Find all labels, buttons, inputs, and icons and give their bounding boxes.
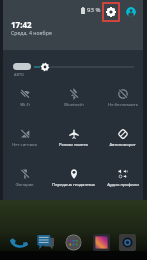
button[interactable]: Фонарик xyxy=(0,160,49,200)
button[interactable]: Phone xyxy=(9,234,26,251)
staticText: 17:42 xyxy=(11,19,32,30)
button[interactable]: Auto brightness xyxy=(13,63,31,70)
staticText: Передача геоданных xyxy=(52,182,95,188)
button[interactable]: All apps xyxy=(65,234,82,251)
button[interactable]: Автоповорот xyxy=(98,120,147,160)
button[interactable]: Wi-Fi xyxy=(0,80,49,120)
button[interactable]: Передача геоданных xyxy=(49,160,98,200)
staticText: Среда, 4 ноября xyxy=(11,29,52,36)
button[interactable]: Gallery xyxy=(93,234,110,251)
button[interactable]: Нет сигнала xyxy=(0,120,49,160)
staticText: Автоповорот xyxy=(109,142,136,148)
staticText: Аудио профили xyxy=(107,182,139,188)
staticText: 93 % xyxy=(87,6,101,14)
staticText: Фонарик xyxy=(15,182,34,188)
button[interactable]: Messages xyxy=(37,234,54,251)
button[interactable]: Не беспокоить xyxy=(98,80,147,120)
staticText: АВТО xyxy=(14,72,24,77)
staticText: Bluetooth xyxy=(64,102,84,108)
button[interactable]: User profile xyxy=(126,7,136,17)
staticText: Wi-Fi xyxy=(20,102,30,108)
button[interactable]: Brightness xyxy=(33,61,134,73)
staticText: Нет сигнала xyxy=(12,142,37,148)
button[interactable]: Settings xyxy=(103,3,119,21)
button[interactable]: Bluetooth xyxy=(49,80,98,120)
staticText: Режим полета xyxy=(59,142,88,148)
button[interactable]: Camera xyxy=(119,234,136,251)
staticText: Не беспокоить xyxy=(108,102,138,108)
button[interactable]: Режим полета xyxy=(49,120,98,160)
button[interactable]: Аудио профили xyxy=(98,160,147,200)
